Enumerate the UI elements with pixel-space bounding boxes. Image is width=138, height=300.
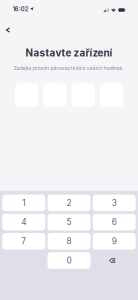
button[interactable]: 9 [93, 233, 136, 250]
button[interactable]: 1 [2, 195, 45, 211]
button[interactable]: 6 [93, 214, 136, 230]
staticText: 16:02 [13, 5, 29, 13]
staticText: 4 [21, 217, 26, 227]
button[interactable]: 7 [2, 233, 45, 250]
button[interactable]: 2 [48, 195, 90, 211]
staticText: 7 [21, 236, 26, 246]
staticText: 6 [112, 217, 117, 227]
staticText: Zadejte prosím párovací kód z vašich hod… [13, 65, 124, 71]
button[interactable]: Delete [93, 252, 136, 269]
staticText: 9 [112, 236, 117, 246]
staticText: 3 [112, 198, 117, 208]
staticText: 2 [66, 198, 71, 208]
button[interactable]: 3 [93, 195, 136, 211]
staticText: 1 [22, 198, 25, 208]
staticText: 8 [66, 236, 71, 246]
staticText: Nastavte zařízení [25, 47, 112, 59]
button[interactable]: 4 [2, 214, 45, 230]
button[interactable]: Back [1, 18, 14, 42]
button[interactable]: 5 [48, 214, 90, 230]
button[interactable]: 8 [48, 233, 90, 250]
staticText: 0 [66, 255, 71, 265]
staticText: 5 [66, 217, 71, 227]
button[interactable]: 0 [48, 252, 90, 269]
